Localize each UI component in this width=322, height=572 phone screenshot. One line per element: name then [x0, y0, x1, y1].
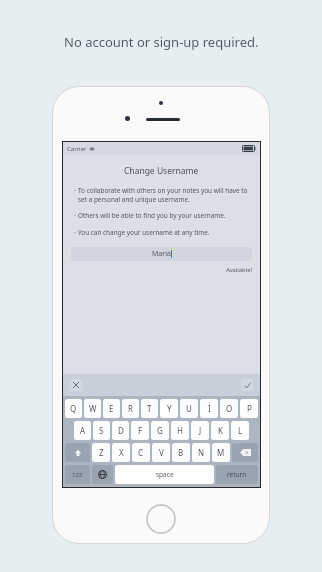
- button[interactable]: V: [152, 443, 170, 462]
- staticText: M: [217, 447, 225, 458]
- button[interactable]: D: [112, 421, 129, 440]
- button[interactable]: J: [191, 421, 209, 440]
- staticText: Y: [167, 403, 172, 414]
- staticText: X: [119, 447, 124, 458]
- staticText: Change Username: [124, 165, 199, 177]
- staticText: You can change your username at any time…: [78, 228, 210, 237]
- button[interactable]: Maria: [71, 247, 252, 261]
- staticText: ·: [74, 211, 76, 221]
- staticText: F: [138, 425, 143, 436]
- staticText: B: [178, 447, 184, 458]
- button[interactable]: Q: [65, 399, 82, 418]
- button[interactable]: U: [180, 399, 198, 418]
- button[interactable]: O: [220, 399, 238, 418]
- staticText: W: [89, 403, 97, 414]
- staticText: N: [198, 447, 205, 458]
- button[interactable]: T: [141, 399, 158, 418]
- button[interactable]: Home: [146, 504, 176, 534]
- staticText: R: [128, 403, 133, 414]
- button[interactable]: C: [132, 443, 150, 462]
- staticText: D: [118, 425, 124, 436]
- button[interactable]: E: [103, 399, 120, 418]
- button[interactable]: Y: [160, 399, 178, 418]
- button[interactable]: Backspace: [232, 443, 258, 462]
- staticText: ·: [74, 228, 76, 238]
- staticText: P: [247, 403, 252, 414]
- button[interactable]: K: [211, 421, 229, 440]
- button[interactable]: W: [84, 399, 101, 418]
- button[interactable]: I: [200, 399, 218, 418]
- button[interactable]: L: [231, 421, 249, 440]
- staticText: Maria: [152, 249, 171, 259]
- button[interactable]: N: [192, 443, 210, 462]
- staticText: J: [199, 425, 202, 436]
- staticText: U: [186, 403, 192, 414]
- staticText: 123: [72, 471, 83, 479]
- button[interactable]: H: [171, 421, 189, 440]
- button[interactable]: B: [172, 443, 190, 462]
- button[interactable]: Cancel: [70, 379, 82, 391]
- staticText: L: [238, 425, 243, 436]
- staticText: I: [208, 403, 211, 414]
- button[interactable]: Shift: [65, 443, 90, 462]
- button[interactable]: S: [93, 421, 110, 440]
- staticText: O: [226, 403, 233, 414]
- staticText: No account or sign-up required.: [64, 33, 259, 51]
- staticText: ·: [74, 186, 76, 196]
- staticText: C: [138, 447, 144, 458]
- staticText: E: [109, 403, 114, 414]
- button[interactable]: G: [151, 421, 169, 440]
- staticText: Z: [99, 447, 104, 458]
- button[interactable]: X: [112, 443, 130, 462]
- staticText: space: [156, 470, 174, 479]
- staticText: Carrier: [67, 145, 87, 153]
- button[interactable]: Change keyboard: [92, 465, 113, 484]
- staticText: H: [177, 425, 183, 436]
- button[interactable]: P: [240, 399, 258, 418]
- button[interactable]: M: [212, 443, 230, 462]
- staticText: T: [147, 403, 152, 414]
- staticText: G: [157, 425, 163, 436]
- button[interactable]: A: [74, 421, 91, 440]
- staticText: Available!: [225, 266, 252, 274]
- button[interactable]: space: [115, 465, 214, 484]
- button[interactable]: R: [122, 399, 139, 418]
- staticText: Others will be able to find you by your …: [78, 211, 226, 220]
- staticText: S: [99, 425, 104, 436]
- button[interactable]: 123: [65, 465, 90, 484]
- staticText: return: [227, 470, 247, 479]
- button[interactable]: return: [216, 465, 258, 484]
- staticText: Q: [70, 403, 77, 414]
- staticText: K: [218, 425, 223, 436]
- staticText: A: [80, 425, 86, 436]
- button[interactable]: Confirm: [241, 379, 253, 391]
- button[interactable]: F: [131, 421, 149, 440]
- staticText: To collaborate with others on your notes…: [78, 186, 249, 204]
- staticText: V: [159, 447, 164, 458]
- button[interactable]: Z: [92, 443, 110, 462]
